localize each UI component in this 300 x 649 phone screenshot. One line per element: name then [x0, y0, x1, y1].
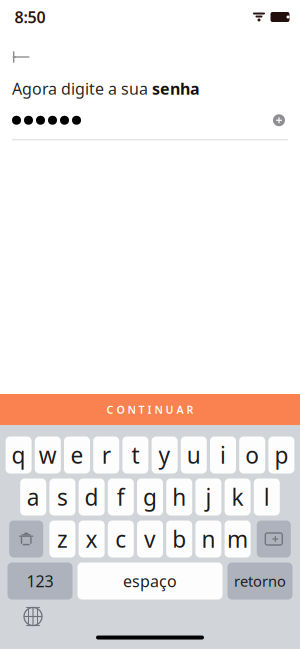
staticText: a	[27, 482, 40, 512]
button[interactable]: z	[49, 520, 75, 557]
staticText: j	[205, 482, 211, 512]
button[interactable]: a	[20, 478, 46, 515]
button[interactable]: u	[181, 436, 207, 473]
staticText: b	[172, 524, 186, 554]
button[interactable]: q	[6, 436, 32, 473]
staticText: s	[57, 482, 68, 512]
button[interactable]: b	[166, 520, 192, 557]
staticText: u	[187, 440, 201, 470]
staticText: w	[39, 440, 57, 470]
staticText: l	[264, 482, 270, 512]
staticText: x	[86, 524, 98, 554]
button[interactable]: r	[93, 436, 119, 473]
staticText: Agora digite a sua	[12, 78, 152, 99]
button[interactable]: w	[35, 436, 61, 473]
staticText: retorno	[234, 571, 286, 591]
button[interactable]: l	[254, 478, 280, 515]
staticText: m	[227, 524, 248, 554]
staticText: senha	[152, 78, 200, 99]
button[interactable]: i	[210, 436, 236, 473]
button[interactable]: f	[108, 478, 134, 515]
button[interactable]: o	[239, 436, 265, 473]
button[interactable]: d	[79, 478, 105, 515]
button[interactable]: y	[152, 436, 178, 473]
staticText: k	[232, 482, 244, 512]
button[interactable]: espaço	[77, 562, 222, 599]
button[interactable]: j	[195, 478, 221, 515]
staticText: n	[201, 524, 215, 554]
button[interactable]: m	[225, 520, 251, 557]
button[interactable]: p	[268, 436, 294, 473]
staticText: p	[274, 440, 288, 470]
staticText: g	[143, 482, 157, 512]
staticText: y	[159, 440, 171, 470]
button[interactable]: x	[79, 520, 105, 557]
button[interactable]: Mudar teclado	[18, 603, 48, 629]
button[interactable]: t	[122, 436, 148, 473]
button[interactable]: Voltar	[0, 34, 52, 72]
button[interactable]: retorno	[227, 562, 292, 599]
staticText: C O N T I N U A R	[106, 402, 193, 417]
button[interactable]: v	[137, 520, 163, 557]
button[interactable]: e	[64, 436, 90, 473]
staticText: e	[70, 440, 83, 470]
staticText: r	[102, 440, 111, 470]
button[interactable]: k	[225, 478, 251, 515]
button[interactable]: Limpar texto	[266, 107, 292, 133]
staticText: 8:50	[14, 6, 45, 28]
staticText: espaço	[123, 570, 177, 592]
staticText: q	[12, 440, 26, 470]
button[interactable]: C O N T I N U A R	[0, 394, 300, 425]
staticText: z	[57, 524, 68, 554]
button[interactable]: s	[49, 478, 75, 515]
staticText: o	[245, 440, 259, 470]
staticText: h	[172, 482, 186, 512]
staticText: v	[144, 524, 156, 554]
button[interactable]: g	[137, 478, 163, 515]
staticText: 123	[26, 570, 53, 592]
staticText: d	[85, 482, 99, 512]
button[interactable]: n	[195, 520, 221, 557]
staticText: t	[131, 440, 139, 470]
staticText: f	[117, 482, 125, 512]
button[interactable]: h	[166, 478, 192, 515]
staticText: i	[220, 440, 226, 470]
button[interactable]: Shift	[9, 520, 43, 557]
button[interactable]: c	[108, 520, 134, 557]
staticText: c	[115, 524, 126, 554]
button[interactable]: 123	[7, 562, 72, 599]
button[interactable]: Apagar	[257, 520, 291, 557]
